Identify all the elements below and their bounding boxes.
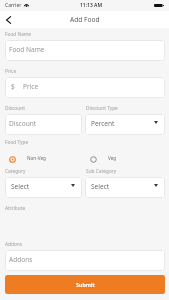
staticText: Price xyxy=(5,68,17,75)
staticText: Discount Type xyxy=(86,105,118,112)
staticText: Discount xyxy=(5,105,25,112)
staticText: Addons xyxy=(5,241,23,248)
staticText: Percent xyxy=(91,119,115,128)
staticText: Addons xyxy=(9,255,33,264)
staticText: Submit xyxy=(76,281,95,288)
button[interactable]: Submit xyxy=(5,275,165,294)
button[interactable]: Discount xyxy=(5,114,82,135)
staticText: Category xyxy=(5,168,26,175)
button[interactable]: Select xyxy=(85,177,165,198)
staticText: Select xyxy=(91,182,110,191)
staticText: Select xyxy=(11,182,30,191)
button[interactable]: Back xyxy=(2,14,14,26)
staticText: 11:13 AM xyxy=(80,2,103,9)
button[interactable]: Food Name xyxy=(5,40,165,61)
button[interactable]: Percent xyxy=(85,114,165,135)
button[interactable]: $ xyxy=(5,77,165,98)
staticText: Food Name xyxy=(5,31,32,38)
button[interactable]: Addons xyxy=(5,250,165,271)
button[interactable]: Veg xyxy=(90,152,164,166)
staticText: $ xyxy=(11,82,15,91)
staticText: Discount xyxy=(9,119,37,128)
staticText: Veg xyxy=(108,155,117,161)
staticText: Food Type xyxy=(5,139,29,146)
button[interactable]: Select xyxy=(5,177,82,198)
staticText: Carrier xyxy=(5,2,22,9)
staticText: Attribute xyxy=(5,205,26,212)
button[interactable]: Non-Veg xyxy=(9,152,83,166)
staticText: Food Name xyxy=(9,45,45,54)
staticText: Non-Veg xyxy=(27,155,46,161)
staticText: Add Food xyxy=(70,15,100,24)
staticText: Sub Category xyxy=(86,168,117,175)
staticText: Price xyxy=(23,82,39,91)
